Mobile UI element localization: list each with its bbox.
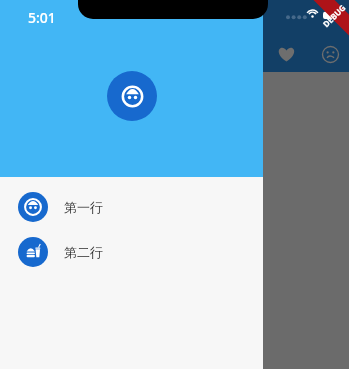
button[interactable]: 第一行	[0, 184, 263, 229]
staticText: DEBUG	[320, 2, 348, 29]
button[interactable]: Report issue	[316, 40, 344, 68]
staticText: 第二行	[64, 244, 103, 260]
button[interactable]: 第二行	[0, 229, 263, 274]
staticText: 5:01	[28, 8, 56, 27]
staticText: 第一行	[64, 199, 103, 215]
button[interactable]: Favourite	[272, 40, 300, 68]
button[interactable]: Profile	[107, 71, 157, 121]
